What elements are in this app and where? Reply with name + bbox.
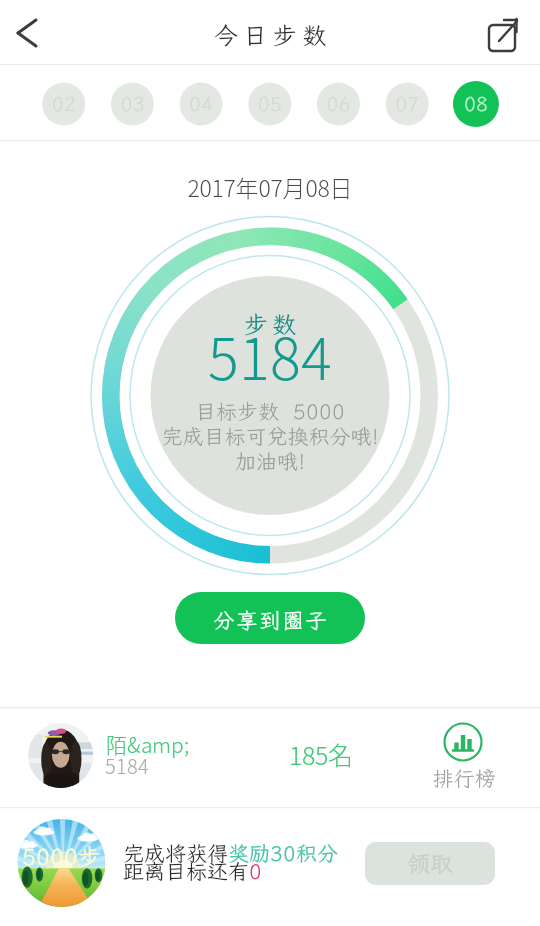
button[interactable] [453, 81, 499, 127]
button[interactable]: 排行榜 [425, 716, 505, 796]
button[interactable] [41, 81, 87, 127]
button[interactable] [247, 81, 293, 127]
button[interactable] [178, 81, 224, 127]
button[interactable] [175, 592, 365, 644]
button[interactable] [109, 81, 155, 127]
button[interactable]: Back [4, 6, 58, 60]
button[interactable]: Share [478, 7, 530, 59]
button[interactable] [316, 81, 362, 127]
button[interactable] [0, 708, 540, 807]
button[interactable] [384, 81, 430, 127]
button[interactable] [364, 844, 497, 889]
